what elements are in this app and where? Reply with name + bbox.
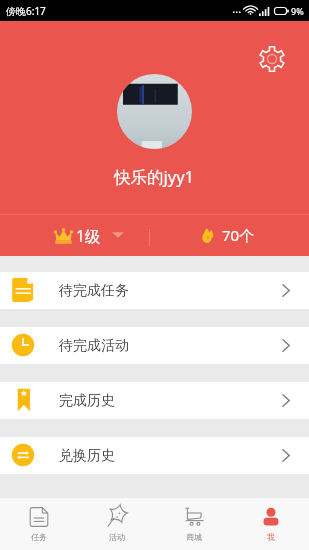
staticText: 70个	[222, 225, 255, 245]
staticText: 任务	[31, 532, 47, 542]
staticText: 快乐的jyy1	[114, 165, 195, 188]
staticText: 1级	[76, 225, 101, 246]
button[interactable]: 待完成任务	[0, 272, 309, 309]
button[interactable]: 待完成活动	[0, 327, 309, 364]
staticText: 完成历史	[59, 392, 115, 410]
staticText: 傍晚6:17	[6, 4, 46, 18]
staticText: 待完成任务	[59, 282, 129, 300]
staticText: 活动	[109, 532, 125, 542]
staticText: 兑换历史	[59, 447, 115, 465]
button[interactable]: 兑换历史	[0, 437, 309, 474]
button[interactable]: Settings	[255, 42, 288, 75]
button[interactable]: 1级	[54, 224, 124, 246]
button[interactable]: 任务	[0, 498, 78, 550]
button[interactable]: 活动	[78, 498, 155, 550]
button[interactable]: Avatar	[117, 74, 192, 149]
staticText: 商城	[186, 532, 202, 542]
button[interactable]: 完成历史	[0, 382, 309, 419]
staticText: 我	[267, 532, 275, 542]
button[interactable]: 我	[232, 498, 309, 550]
button[interactable]: 商城	[155, 498, 232, 550]
button[interactable]: 70个	[201, 224, 255, 246]
staticText: 9%	[291, 5, 304, 17]
staticText: 待完成活动	[59, 337, 129, 355]
